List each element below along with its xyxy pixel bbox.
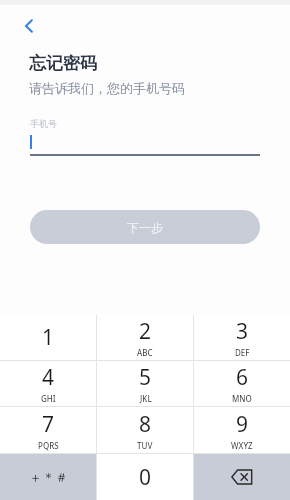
staticText: 2: [139, 317, 152, 346]
staticText: 0: [139, 463, 152, 492]
button[interactable]: 5: [97, 361, 193, 406]
button[interactable]: 1: [0, 315, 96, 360]
button[interactable]: 9: [194, 407, 290, 453]
button[interactable]: 2: [97, 315, 193, 360]
staticText: 1: [42, 323, 55, 352]
staticText: 4: [42, 363, 55, 392]
staticText: MNO: [232, 393, 252, 404]
staticText: ABC: [137, 347, 153, 358]
button[interactable]: 6: [194, 361, 290, 406]
staticText: 忘记密码: [29, 53, 97, 74]
staticText: 9: [236, 410, 249, 439]
staticText: 7: [42, 410, 55, 439]
button[interactable]: 下一步: [30, 210, 260, 244]
staticText: 手机号: [30, 118, 57, 129]
staticText: ＋＊＃: [29, 469, 68, 485]
staticText: 8: [139, 410, 152, 439]
button[interactable]: Backspace: [194, 454, 290, 500]
button[interactable]: 8: [97, 407, 193, 453]
button[interactable]: 3: [194, 315, 290, 360]
staticText: 下一步: [127, 220, 163, 235]
staticText: TUV: [137, 440, 153, 451]
button[interactable]: ＋＊＃: [0, 454, 96, 500]
staticText: 5: [139, 363, 152, 392]
staticText: PQRS: [38, 440, 59, 451]
staticText: WXYZ: [231, 440, 253, 451]
button[interactable]: 7: [0, 407, 96, 453]
staticText: GHI: [41, 393, 56, 404]
button[interactable]: [30, 134, 260, 156]
staticText: 3: [236, 317, 249, 346]
button[interactable]: 0: [97, 454, 193, 500]
button[interactable]: 4: [0, 361, 96, 406]
staticText: JKL: [140, 393, 152, 404]
staticText: 6: [236, 363, 249, 392]
button[interactable]: Back: [12, 9, 46, 43]
staticText: DEF: [235, 347, 250, 358]
staticText: 请告诉我们，您的手机号码: [29, 80, 185, 96]
